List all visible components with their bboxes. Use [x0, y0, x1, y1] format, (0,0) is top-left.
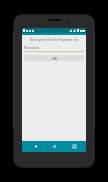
button[interactable]: Recent apps	[67, 141, 81, 152]
button[interactable]: Passwort	[24, 45, 84, 52]
staticText: Bitte geben Sie Ihr Passwort ein	[24, 38, 84, 42]
button[interactable]: OK	[24, 55, 84, 61]
button[interactable]: Home	[47, 141, 61, 152]
staticText: Passwort	[24, 45, 40, 50]
staticText: OK	[52, 56, 57, 61]
button[interactable]: Back	[28, 141, 42, 152]
